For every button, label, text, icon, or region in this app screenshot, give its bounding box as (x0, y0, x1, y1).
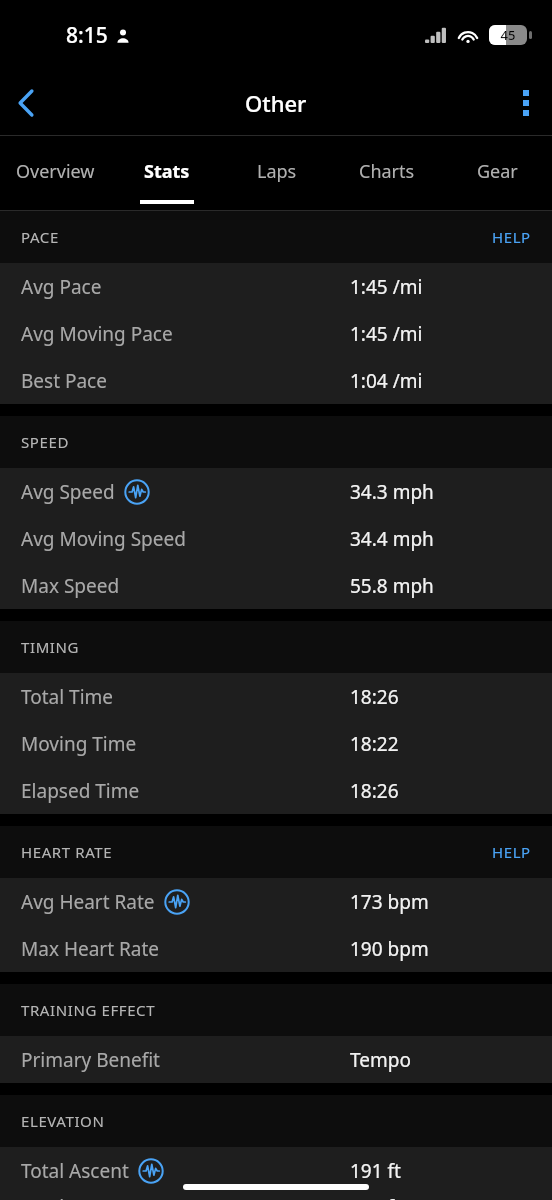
button[interactable]: Stats (111, 136, 222, 210)
staticText: Other (245, 88, 307, 118)
button[interactable]: HELP (471, 826, 552, 878)
button[interactable]: Avg Speed (0, 468, 552, 515)
staticText: Avg Pace (21, 274, 102, 300)
staticText: Total Descent (21, 1194, 142, 1200)
staticText: Total Time (21, 684, 114, 710)
staticText: ELEVATION (21, 1111, 105, 1131)
staticText: HEART RATE (21, 842, 113, 862)
staticText: Charts (359, 159, 415, 184)
staticText: Total Ascent (21, 1158, 129, 1184)
staticText: Avg Moving Speed (21, 526, 186, 552)
button[interactable]: Charts (332, 136, 442, 210)
staticText: Laps (257, 159, 297, 184)
staticText: Tempo (350, 1047, 411, 1073)
staticText: TIMING (21, 637, 80, 657)
staticText: Primary Benefit (21, 1047, 160, 1073)
button[interactable]: Overview (0, 136, 111, 210)
button[interactable]: Avg Moving Pace (0, 310, 552, 357)
staticText: 55.8 mph (350, 573, 434, 599)
staticText: 34.3 mph (350, 479, 434, 505)
button[interactable]: Total Time (0, 673, 552, 720)
staticText: Elapsed Time (21, 778, 140, 804)
staticText: Overview (16, 159, 95, 184)
staticText: Avg Speed (21, 479, 115, 505)
button[interactable]: Elapsed Time (0, 767, 552, 814)
button[interactable]: Max Speed (0, 562, 552, 609)
staticText: Moving Time (21, 731, 137, 757)
button[interactable]: More options (500, 77, 552, 129)
button[interactable]: HELP (471, 211, 552, 263)
button[interactable]: Total Descent (0, 1194, 552, 1200)
staticText: 18:26 (350, 778, 399, 804)
staticText: 171 ft (350, 1194, 401, 1200)
staticText: 1:04 /mi (350, 368, 423, 394)
button[interactable]: Max Heart Rate (0, 925, 552, 972)
button[interactable]: Primary Benefit (0, 1036, 552, 1083)
staticText: 190 bpm (350, 936, 429, 962)
staticText: Avg Heart Rate (21, 889, 155, 915)
button[interactable]: Total Ascent (0, 1147, 552, 1194)
staticText: Gear (477, 159, 518, 184)
staticText: 191 ft (350, 1158, 401, 1184)
staticText: Stats (144, 159, 190, 184)
staticText: 45 (489, 26, 527, 44)
button[interactable]: Gear (442, 136, 552, 210)
button[interactable]: Back (0, 77, 52, 129)
staticText: 34.4 mph (350, 526, 434, 552)
staticText: 1:45 /mi (350, 274, 423, 300)
staticText: PACE (21, 227, 59, 247)
staticText: TRAINING EFFECT (21, 1000, 156, 1020)
staticText: 173 bpm (350, 889, 429, 915)
staticText: 1:45 /mi (350, 321, 423, 347)
staticText: HELP (492, 842, 531, 862)
button[interactable]: Laps (222, 136, 332, 210)
button[interactable]: Avg Moving Speed (0, 515, 552, 562)
staticText: Max Speed (21, 573, 120, 599)
button[interactable]: Avg Heart Rate (0, 878, 552, 925)
button[interactable]: Avg Pace (0, 263, 552, 310)
staticText: Avg Moving Pace (21, 321, 173, 347)
staticText: Best Pace (21, 368, 107, 394)
staticText: SPEED (21, 432, 69, 452)
button[interactable]: Moving Time (0, 720, 552, 767)
staticText: 8:15 (66, 21, 108, 50)
button[interactable]: Best Pace (0, 357, 552, 404)
staticText: HELP (492, 227, 531, 247)
staticText: 18:22 (350, 731, 399, 757)
staticText: 18:26 (350, 684, 399, 710)
staticText: Max Heart Rate (21, 936, 160, 962)
